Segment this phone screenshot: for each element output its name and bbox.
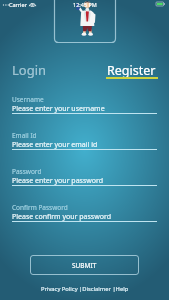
staticText: SUBMIT	[72, 261, 97, 270]
button[interactable]: Register	[106, 60, 157, 80]
staticText: Carrier	[9, 1, 27, 8]
staticText: Login	[12, 61, 47, 79]
staticText: Password	[12, 167, 42, 176]
button[interactable]: Email Id	[12, 127, 157, 150]
staticText: Privacy Policy |Disclaimer |Help	[41, 285, 129, 293]
button[interactable]: Password	[12, 163, 157, 186]
staticText: Please confirm your password	[12, 212, 112, 222]
button[interactable]: Privacy Policy |Disclaimer |Help	[41, 285, 129, 293]
staticText: Register	[107, 62, 156, 79]
staticText: Please enter your email id	[12, 140, 98, 150]
staticText: 12:45 PM	[73, 1, 97, 8]
staticText: Email Id	[12, 131, 37, 140]
staticText: Confirm Password	[12, 203, 68, 212]
other: Battery	[156, 2, 165, 6]
staticText: Username	[12, 95, 44, 104]
button[interactable]: Username	[12, 91, 157, 114]
staticText: Please enter your password	[12, 176, 104, 186]
staticText: Please enter your username	[12, 104, 105, 114]
button[interactable]: Login	[0, 60, 57, 80]
button[interactable]: Confirm Password	[12, 199, 157, 222]
button[interactable]: SUBMIT	[30, 255, 139, 275]
